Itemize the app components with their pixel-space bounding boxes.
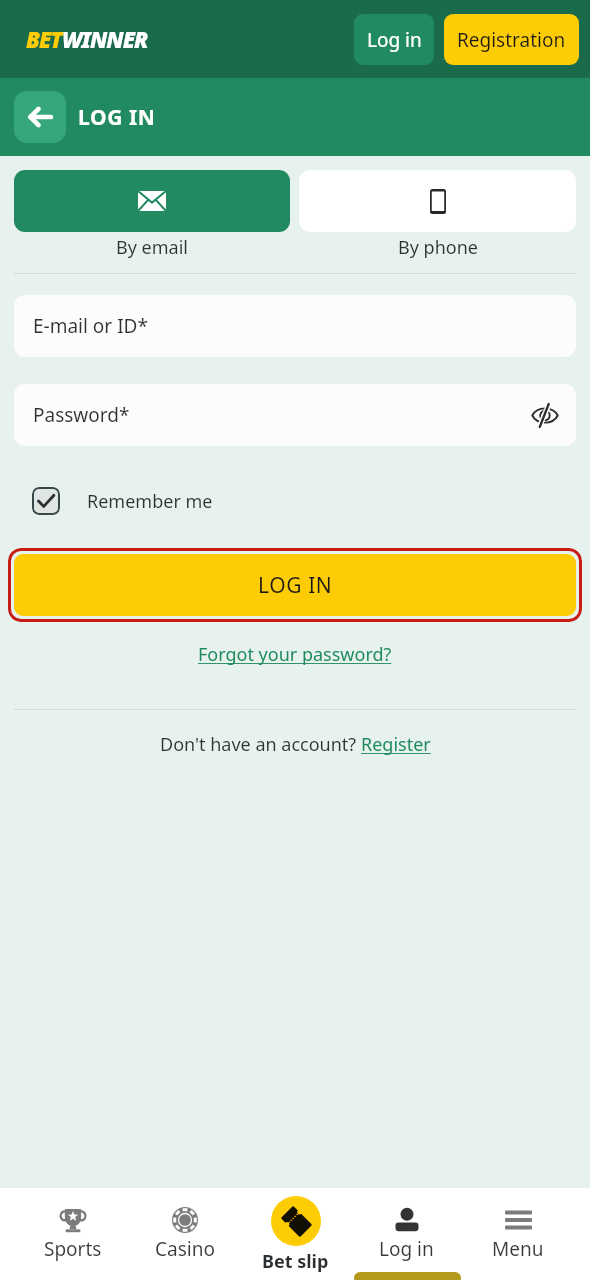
button[interactable]: Log in [351, 1188, 462, 1262]
staticText: E-mail or ID* [33, 313, 148, 339]
button[interactable]: Menu [462, 1188, 573, 1262]
staticText: By email [116, 235, 188, 260]
button[interactable]: E-mail or ID* [14, 295, 576, 357]
button[interactable]: By phone [299, 170, 576, 260]
staticText: Sports [44, 1236, 102, 1262]
staticText: Log in [379, 1236, 434, 1262]
button[interactable]: Password* [14, 384, 576, 446]
button[interactable]: Show password [529, 399, 561, 431]
staticText: Password* [33, 402, 130, 428]
button[interactable]: Bet slip [240, 1188, 351, 1274]
staticText: Menu [492, 1236, 544, 1262]
staticText: WINNER [62, 24, 148, 54]
button[interactable]: Registration [444, 14, 579, 65]
button[interactable]: Casino [129, 1188, 240, 1262]
button[interactable]: Log in [354, 14, 434, 65]
button[interactable]: Register [361, 732, 431, 757]
button[interactable]: Sports [17, 1188, 129, 1262]
button[interactable]: By email [14, 170, 290, 260]
staticText: LOG IN [258, 571, 333, 600]
staticText: Casino [155, 1236, 215, 1262]
staticText: Log in [367, 27, 422, 53]
staticText: Remember me [87, 489, 213, 514]
staticText: LOG IN [78, 103, 156, 132]
button[interactable]: LOG IN [14, 554, 576, 616]
staticText: Bet slip [262, 1249, 329, 1274]
staticText: Registration [457, 27, 566, 53]
staticText: By phone [398, 235, 478, 260]
button[interactable]: Forgot your password? [194, 638, 396, 671]
button[interactable]: Remember me checkbox [0, 487, 590, 515]
other: Remember me checkbox [32, 487, 60, 515]
staticText: Don't have an account? [160, 732, 361, 757]
staticText: BET [26, 24, 62, 54]
button[interactable]: Back [14, 91, 66, 143]
